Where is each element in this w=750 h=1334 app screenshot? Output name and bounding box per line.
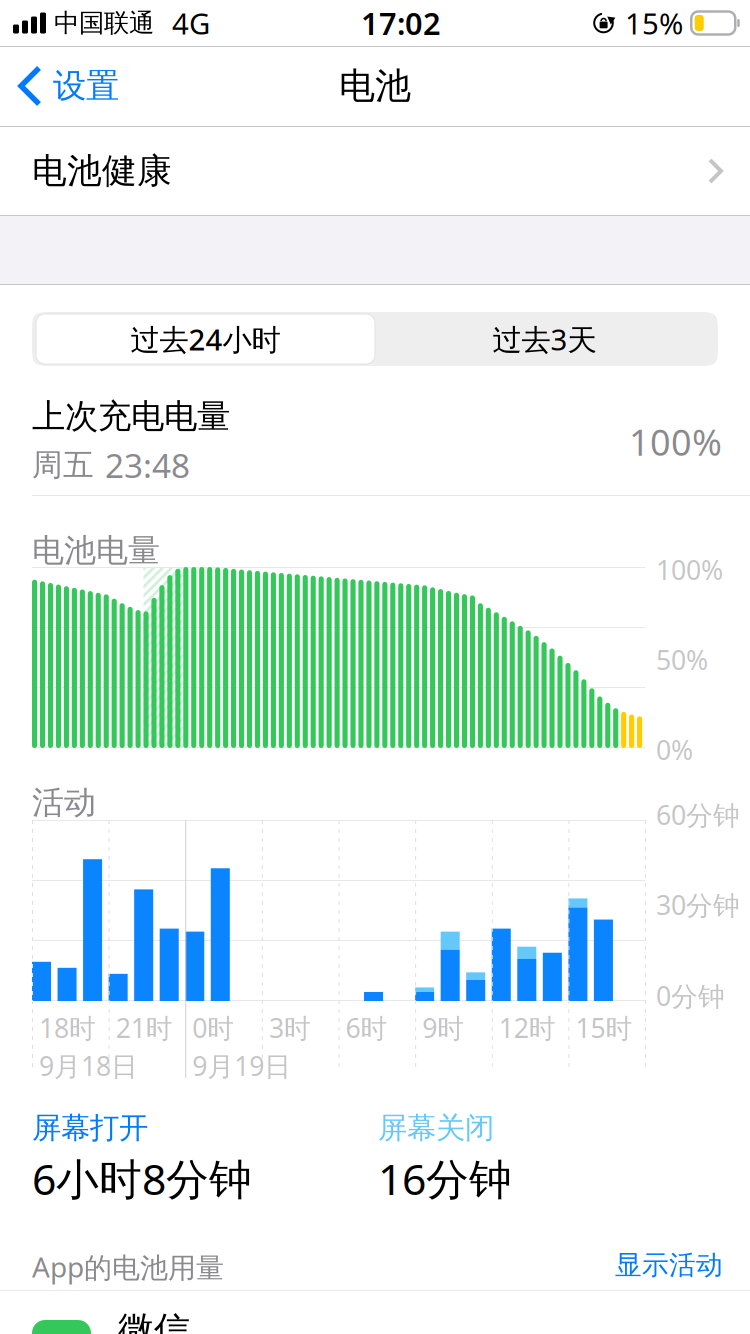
staticText: 过去24小时 — [130, 319, 280, 358]
button[interactable]: 电池健康 — [0, 127, 750, 215]
staticText: 0时 — [192, 1010, 234, 1045]
button[interactable]: 设置 — [0, 47, 131, 125]
staticText: 17:02 — [361, 3, 441, 43]
staticText: 16分钟 — [378, 1150, 512, 1207]
staticText: 4G — [172, 3, 210, 42]
staticText: 100% — [656, 552, 723, 587]
staticText: 60分钟 — [656, 797, 740, 832]
staticText: 电池 — [339, 64, 411, 108]
staticText: 0% — [656, 732, 693, 767]
staticText: 6小时8分钟 — [32, 1150, 252, 1207]
staticText: 30分钟 — [656, 887, 740, 922]
staticText: 3时 — [269, 1010, 311, 1045]
staticText: 23:48 — [105, 443, 190, 487]
staticText: 9时 — [422, 1010, 464, 1045]
staticText: 0分钟 — [656, 978, 725, 1013]
staticText: 中国联通 — [54, 7, 154, 38]
staticText: 电池电量 — [32, 531, 160, 570]
staticText: 9月19日 — [192, 1048, 291, 1083]
staticText: 活动 — [32, 783, 96, 822]
staticText: 显示活动 — [615, 1249, 723, 1281]
staticText: App的电池用量 — [32, 1248, 224, 1285]
staticText: 15时 — [575, 1010, 632, 1045]
staticText: 上次充电电量 — [32, 396, 230, 437]
staticText: 过去3天 — [492, 319, 596, 358]
staticText: 微信 — [118, 1308, 190, 1334]
staticText: 50% — [656, 642, 708, 677]
staticText: 6时 — [345, 1010, 387, 1045]
button[interactable]: 显示活动 — [615, 1248, 725, 1282]
staticText: 设置 — [53, 65, 119, 106]
staticText: 屏幕关闭 — [378, 1110, 494, 1146]
button[interactable]: 过去24小时 — [36, 314, 375, 364]
staticText: 电池健康 — [32, 150, 172, 192]
staticText: 100% — [629, 418, 722, 466]
button[interactable]: 过去3天 — [375, 314, 714, 364]
staticText: 12时 — [499, 1010, 556, 1045]
staticText: 屏幕打开 — [32, 1110, 148, 1146]
staticText: 18时 — [39, 1010, 96, 1045]
staticText: 9月18日 — [39, 1048, 138, 1083]
staticText: 周五 — [32, 446, 94, 484]
staticText: 21时 — [116, 1010, 173, 1045]
staticText: 15% — [625, 3, 683, 42]
